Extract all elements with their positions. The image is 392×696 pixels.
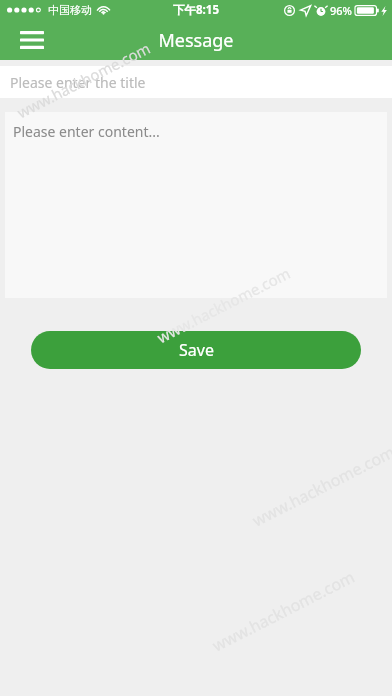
staticText: www.hackhome.com (153, 263, 294, 347)
staticText: 中国移动 (48, 3, 92, 17)
button[interactable]: Please enter content... (5, 112, 387, 298)
staticText: Save (179, 339, 214, 361)
staticText: Please enter the title (10, 73, 146, 92)
button[interactable]: Menu (10, 20, 54, 60)
button[interactable]: Save (31, 331, 361, 369)
staticText: Message (158, 28, 234, 53)
staticText: www.hackhome.com (13, 38, 154, 122)
staticText: Please enter content... (13, 122, 160, 141)
staticText: 96% (330, 3, 352, 18)
button[interactable]: Please enter the title (0, 66, 392, 98)
staticText: 下午8:15 (173, 2, 219, 18)
